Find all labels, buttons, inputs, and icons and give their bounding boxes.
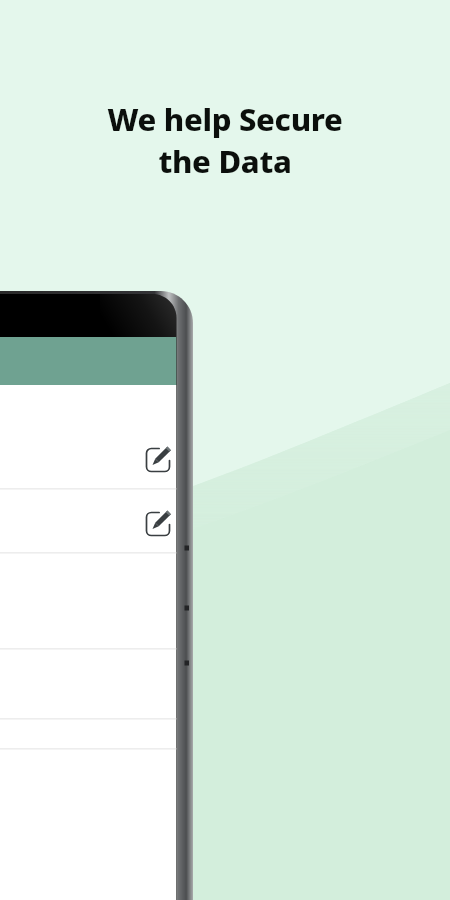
button[interactable]: Edit email — [145, 510, 173, 538]
button[interactable]: Edit name — [145, 446, 173, 474]
staticText: the Data — [158, 140, 292, 182]
button[interactable]: Profile row 1 — [0, 385, 177, 488]
button[interactable]: Profile title bar — [0, 337, 177, 385]
button[interactable]: Profile row 2 — [0, 488, 177, 552]
button[interactable]: Profile row 3 — [0, 552, 177, 648]
staticText: We help Secure — [107, 98, 343, 140]
button[interactable]: Profile row 4 — [0, 648, 177, 718]
